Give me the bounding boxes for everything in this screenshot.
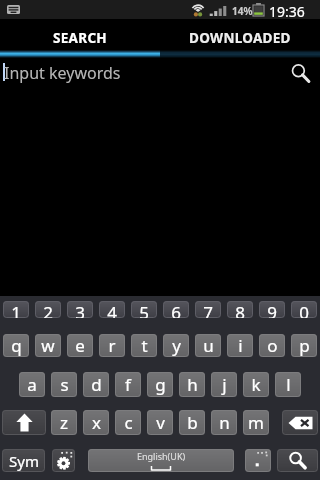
staticText: n [219,411,230,434]
button[interactable]: y [163,334,189,357]
staticText: w [41,334,55,357]
staticText: q [11,334,22,357]
staticText: 14% [232,4,253,18]
button[interactable]: b [179,410,205,435]
button[interactable]: Delete [282,410,318,435]
staticText: b [187,411,198,434]
staticText: 3 [75,301,85,318]
button[interactable]: Sym [2,449,45,472]
staticText: d [91,373,102,396]
button[interactable]: n [211,410,237,435]
staticText: 2 [43,301,53,318]
staticText: f [125,373,131,396]
button[interactable]: 6 [163,301,189,318]
staticText: i [238,334,243,357]
button[interactable]: e [67,334,93,357]
button[interactable]: 5 [131,301,157,318]
staticText: j [222,373,227,396]
staticText: SEARCH [53,29,107,47]
staticText: c [124,411,133,434]
button[interactable]: g [147,372,173,397]
staticText: s [60,373,69,396]
button[interactable]: 7 [195,301,221,318]
button[interactable]: h [179,372,205,397]
staticText: l [286,373,291,396]
button[interactable]: m [243,410,269,435]
staticText: 9 [267,301,277,318]
button[interactable]: o [259,334,285,357]
button[interactable]: d [83,372,109,397]
button[interactable]: p [291,334,317,357]
button[interactable]: 0 [291,301,317,318]
button[interactable]: Search [286,59,314,87]
staticText: 7 [203,301,213,318]
button[interactable]: 1 [3,301,29,318]
button[interactable]: DOWNLOADED [160,19,320,50]
button[interactable]: a [19,372,45,397]
button[interactable]: Shift [2,410,46,435]
button[interactable]: 3 [67,301,93,318]
staticText: 1 [11,301,21,318]
staticText: g [155,373,166,396]
staticText: 19:36 [269,2,305,21]
button[interactable]: t [131,334,157,357]
button[interactable]: s [51,372,77,397]
staticText: 8 [235,301,245,318]
staticText: o [267,334,278,357]
button[interactable]: i [227,334,253,357]
staticText: a [27,373,37,396]
staticText: DOWNLOADED [189,29,291,47]
staticText: e [75,334,85,357]
button[interactable]: v [147,410,173,435]
staticText: Sym [9,451,39,471]
staticText: 6 [171,301,181,318]
button[interactable]: Input keywords [0,56,320,96]
staticText: r [108,334,116,357]
staticText: 5 [139,301,149,318]
button[interactable]: u [195,334,221,357]
staticText: z [60,411,68,434]
staticText: y [172,334,181,357]
button[interactable]: 2 [35,301,61,318]
button[interactable]: z [51,410,77,435]
button[interactable]: 9 [259,301,285,318]
button[interactable]: f [115,372,141,397]
button[interactable]: q [3,334,29,357]
staticText: x [92,411,101,434]
staticText: m [248,411,264,434]
button[interactable]: 4 [99,301,125,318]
button[interactable]: Settings [52,449,75,472]
staticText: k [251,373,261,396]
button[interactable]: l [275,372,301,397]
button[interactable]: Search [277,449,318,472]
staticText: u [203,334,214,357]
button[interactable]: r [99,334,125,357]
staticText: 4 [107,301,117,318]
staticText: 0 [299,301,309,318]
staticText: h [187,373,198,396]
staticText: English(UK) [137,450,186,462]
staticText: v [156,411,165,434]
button[interactable]: 8 [227,301,253,318]
button[interactable]: SEARCH [0,19,160,50]
button[interactable]: k [243,372,269,397]
button[interactable]: Punctuation [245,449,271,472]
button[interactable]: c [115,410,141,435]
button[interactable]: x [83,410,109,435]
staticText: t [141,334,148,357]
staticText: Input keywords [4,62,121,84]
button[interactable]: j [211,372,237,397]
button[interactable]: Space [88,449,234,472]
button[interactable]: w [35,334,61,357]
staticText: p [299,334,310,357]
